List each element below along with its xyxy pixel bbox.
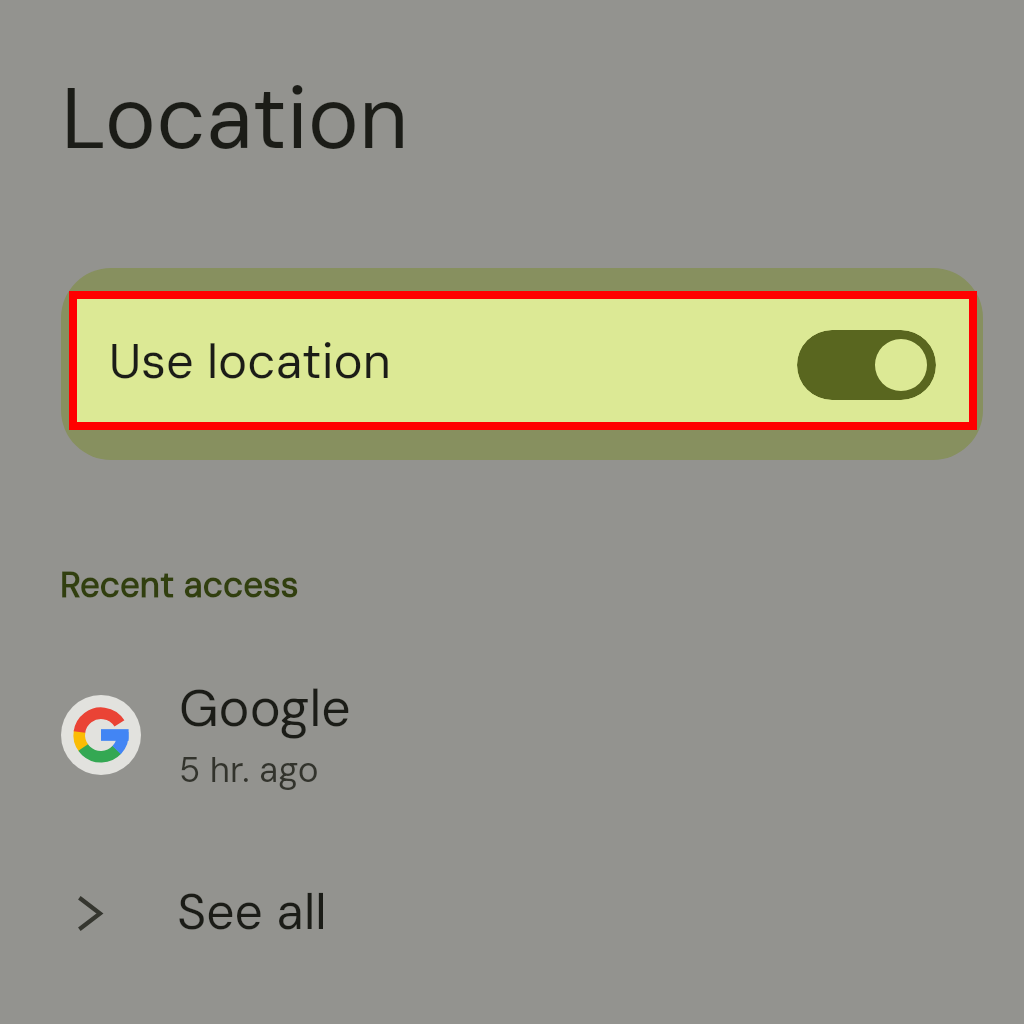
staticText: Recent access xyxy=(60,562,299,608)
button[interactable]: Google xyxy=(0,665,1024,797)
button[interactable]: Use location toggle, on xyxy=(797,330,936,400)
staticText: 5 hr. ago xyxy=(179,747,319,793)
button[interactable]: Use location xyxy=(69,291,977,430)
button[interactable]: See all xyxy=(0,859,1024,963)
staticText: Google xyxy=(179,674,351,742)
staticText: See all xyxy=(177,879,327,944)
other: See all xyxy=(80,898,101,929)
staticText: Use location xyxy=(109,329,392,393)
staticText: Location xyxy=(61,63,409,175)
